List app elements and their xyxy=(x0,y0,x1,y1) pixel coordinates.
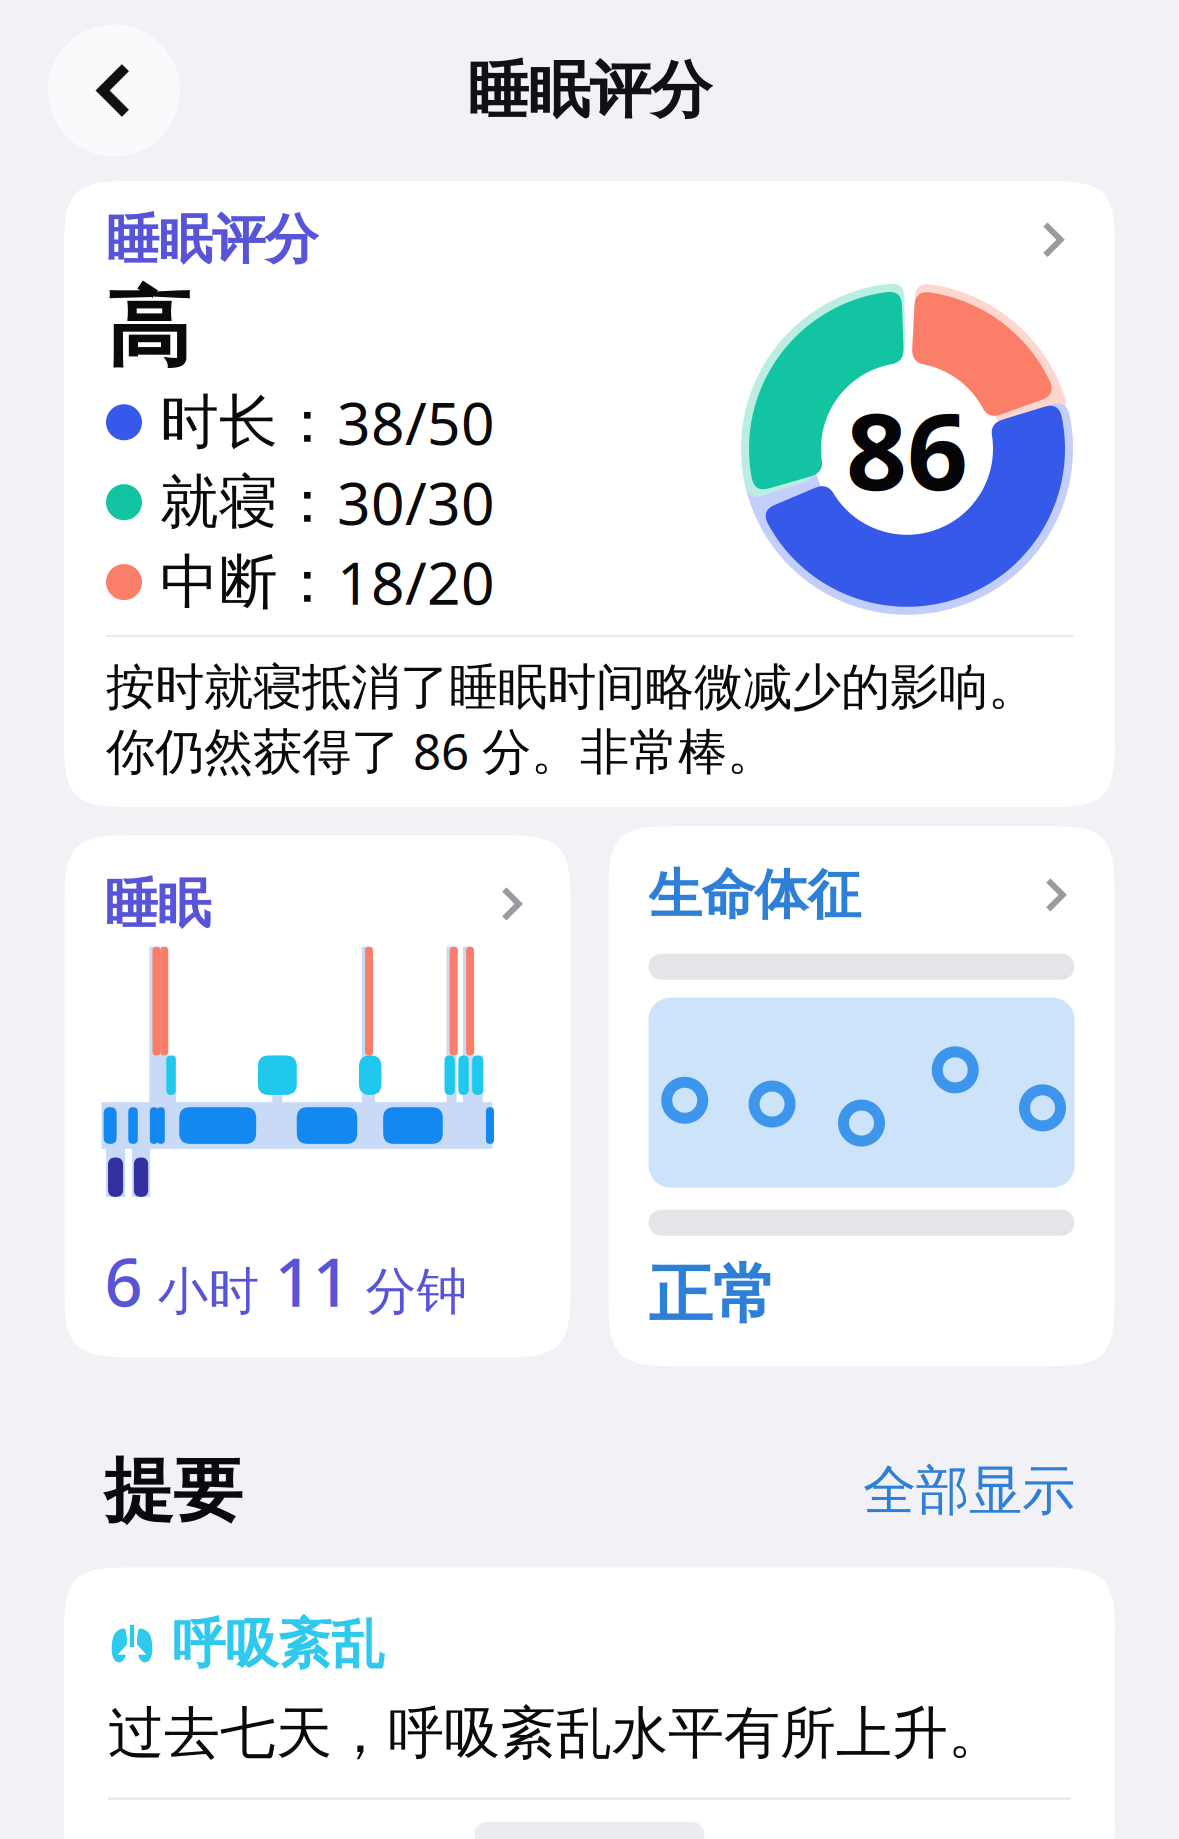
staticText: 中断： xyxy=(160,546,337,618)
staticText: 就寝： xyxy=(160,466,337,538)
button[interactable]: 返回 xyxy=(48,24,180,156)
staticText: 全部显示 xyxy=(863,1458,1075,1524)
staticText: 6 小时 11 分钟 xyxy=(104,1237,467,1325)
button[interactable]: 全部显示 xyxy=(863,1458,1075,1524)
button[interactable]: 睡眠 xyxy=(64,835,570,1357)
button[interactable]: 生命体征 xyxy=(608,826,1114,1366)
staticText: 提要 xyxy=(104,1448,242,1533)
staticText: 18/20 xyxy=(337,543,495,621)
staticText: 过去七天，呼吸紊乱水平有所上升。 xyxy=(108,1699,1004,1768)
staticText: 睡眠评分 xyxy=(467,53,711,128)
staticText: 30/30 xyxy=(337,463,495,541)
staticText: 时长： xyxy=(160,386,337,458)
staticText: 高 xyxy=(106,276,191,381)
staticText: 睡眠 xyxy=(104,871,210,937)
staticText: 按时就寝抵消了睡眠时间略微减少的影响。你仍然获得了 86 分。非常棒。 xyxy=(106,657,1037,783)
staticText: 86 xyxy=(846,378,968,520)
staticText: 正常 xyxy=(648,1256,776,1334)
staticText: 呼吸紊乱 xyxy=(172,1611,384,1677)
staticText: 睡眠评分 xyxy=(106,207,318,272)
staticText: 生命体征 xyxy=(648,862,860,928)
button[interactable]: 睡眠评分 xyxy=(64,181,1115,807)
button[interactable]: 呼吸紊乱 xyxy=(64,1567,1115,1839)
staticText: 38/50 xyxy=(337,383,495,461)
